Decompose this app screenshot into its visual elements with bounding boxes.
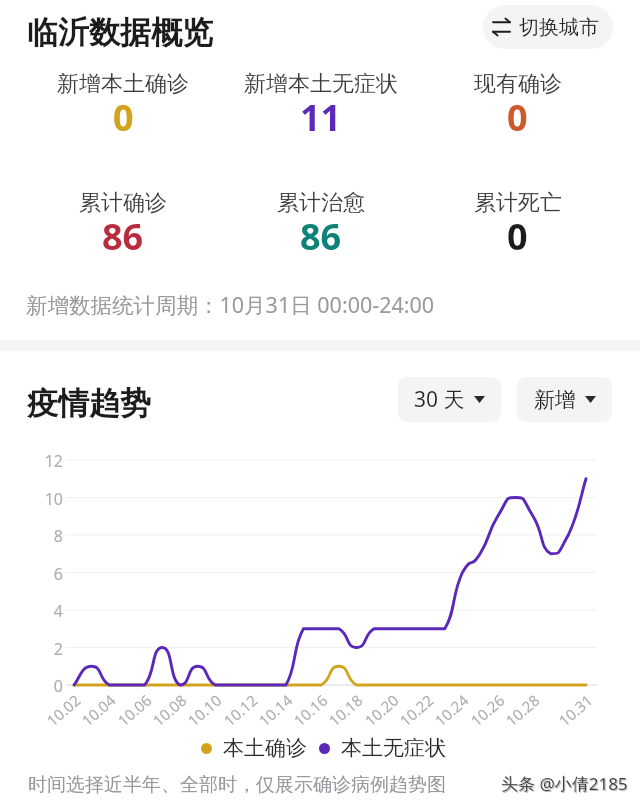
staticText: 10.26 [466, 690, 509, 730]
staticText: 10.24 [430, 690, 473, 730]
staticText: 时间选择近半年、全部时，仅展示确诊病例趋势图 [28, 773, 446, 797]
staticText: 0 [113, 93, 134, 142]
staticText: 11 [300, 93, 342, 142]
button[interactable]: 本土无症状 [319, 735, 446, 761]
staticText: 10.20 [360, 690, 403, 730]
staticText: 头条 @小倩2185 [502, 773, 629, 796]
staticText: 现有确诊 [474, 70, 562, 98]
staticText: 新增数据统计周期：10月31日 00:00-24:00 [26, 290, 435, 319]
staticText: 头条 @小倩2185 [501, 772, 628, 795]
staticText: 0 [53, 675, 63, 697]
staticText: 累计确诊 [79, 189, 167, 217]
staticText: 疫情趋势 [27, 384, 151, 423]
staticText: 10.10 [183, 690, 226, 730]
staticText: 累计死亡 [474, 189, 562, 217]
staticText: 切换城市 [519, 15, 599, 40]
button[interactable]: 切换城市 [483, 5, 613, 49]
staticText: 本土无症状 [341, 735, 446, 761]
staticText: 10.31 [554, 690, 597, 730]
staticText: 8 [53, 525, 63, 547]
staticText: 10 [44, 488, 63, 510]
staticText: 4 [53, 600, 63, 622]
staticText: 10.06 [113, 690, 156, 730]
staticText: 10.02 [42, 690, 85, 730]
staticText: 12 [44, 450, 63, 472]
staticText: 10.04 [77, 690, 120, 730]
staticText: 临沂数据概览 [27, 13, 213, 52]
staticText: 6 [53, 563, 63, 585]
button[interactable]: 30 天 [398, 377, 501, 422]
staticText: 0 [507, 93, 528, 142]
staticText: 10.12 [219, 690, 262, 730]
button[interactable]: 新增 [517, 377, 612, 422]
button[interactable]: 本土确诊 [201, 735, 307, 761]
staticText: 86 [300, 212, 342, 261]
staticText: 10.08 [148, 690, 191, 730]
staticText: 新增本土无症状 [244, 70, 398, 98]
staticText: 累计治愈 [277, 189, 365, 217]
staticText: 新增本土确诊 [57, 70, 189, 98]
staticText: 本土确诊 [223, 735, 307, 761]
staticText: 86 [102, 212, 144, 261]
staticText: 10.18 [324, 690, 367, 730]
staticText: 10.16 [289, 690, 332, 730]
staticText: 10.22 [395, 690, 438, 730]
other: 切换城市 [493, 21, 510, 33]
staticText: 10.14 [254, 690, 297, 730]
staticText: 2 [53, 638, 63, 660]
staticText: 10.28 [501, 690, 544, 730]
staticText: 新增 [534, 387, 576, 413]
staticText: 0 [507, 212, 528, 261]
staticText: 30 天 [414, 385, 465, 414]
